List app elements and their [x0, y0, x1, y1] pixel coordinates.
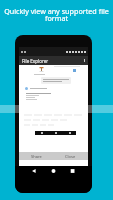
button[interactable]	[35, 131, 76, 135]
button[interactable]: File Explorer	[19, 56, 88, 65]
button[interactable]	[41, 77, 71, 84]
button[interactable]: More options	[83, 59, 86, 62]
staticText: Close	[65, 154, 76, 159]
button[interactable]: Close	[53, 152, 88, 160]
staticText: File Explorer	[22, 58, 49, 64]
staticText: Share	[31, 154, 42, 159]
button[interactable]: Share	[19, 152, 53, 160]
staticText: Quickly view any supported file format	[0, 6, 113, 23]
button[interactable]	[25, 87, 47, 90]
other: System navigation	[15, 166, 92, 178]
